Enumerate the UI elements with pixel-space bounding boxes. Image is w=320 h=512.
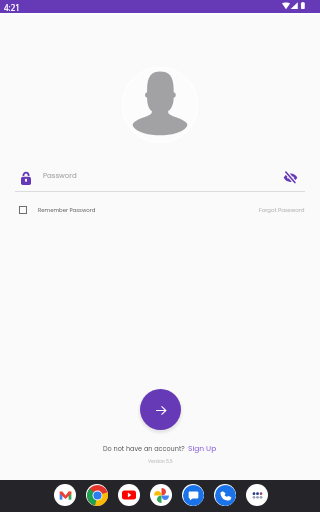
button[interactable]: Chrome: [86, 484, 108, 506]
staticText: Forgot Password: [259, 206, 305, 214]
button[interactable]: Show password: [282, 169, 298, 185]
button[interactable]: Forgot Password: [259, 206, 305, 214]
staticText: Do not have an account?: [103, 444, 185, 453]
staticText: Version 5.5: [148, 458, 173, 464]
button[interactable]: Gmail: [54, 484, 76, 506]
staticText: 4:21: [4, 2, 20, 13]
button[interactable]: Sign Up: [188, 443, 217, 453]
button[interactable]: Messages: [182, 484, 204, 506]
button[interactable]: Phone: [214, 484, 236, 506]
staticText: Password: [43, 171, 77, 181]
button[interactable]: Remember Password: [15, 206, 96, 214]
button[interactable]: All apps: [246, 484, 268, 506]
staticText: Sign Up: [188, 443, 217, 453]
staticText: Remember Password: [38, 206, 96, 214]
button[interactable]: YouTube: [118, 484, 140, 506]
button[interactable]: Photos: [150, 484, 172, 506]
button[interactable]: Login: [140, 389, 181, 430]
